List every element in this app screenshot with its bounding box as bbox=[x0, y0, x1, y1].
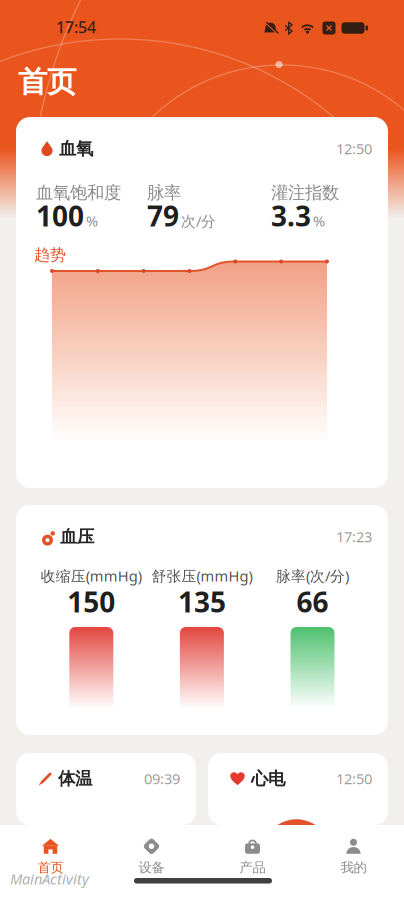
staticText: 设备 bbox=[138, 859, 164, 876]
staticText: 12:50 bbox=[336, 769, 372, 788]
staticText: 趋势 bbox=[34, 245, 66, 265]
staticText: 135 bbox=[178, 583, 226, 620]
staticText: % bbox=[86, 211, 98, 230]
staticText: 12:50 bbox=[336, 139, 372, 158]
staticText: 舒张压(mmHg) bbox=[151, 566, 252, 585]
staticText: 收缩压(mmHg) bbox=[41, 566, 142, 585]
staticText: % bbox=[313, 211, 325, 230]
staticText: 首页 bbox=[18, 64, 76, 100]
staticText: 血氧饱和度 bbox=[36, 182, 121, 203]
staticText: 09:39 bbox=[144, 769, 180, 788]
button[interactable]: 我的 bbox=[303, 831, 404, 883]
staticText: 100 bbox=[36, 197, 84, 234]
staticText: 次/分 bbox=[181, 211, 216, 231]
staticText: 我的 bbox=[340, 859, 366, 876]
button[interactable]: 血压 bbox=[16, 505, 388, 735]
button[interactable]: 心电 bbox=[208, 753, 388, 825]
staticText: 150 bbox=[67, 583, 115, 620]
staticText: 首页 bbox=[37, 859, 63, 876]
staticText: 血氧 bbox=[59, 138, 93, 159]
button[interactable]: 产品 bbox=[202, 831, 303, 883]
staticText: 66 bbox=[296, 583, 328, 620]
staticText: 3.3 bbox=[271, 197, 311, 234]
staticText: 血压 bbox=[60, 526, 94, 547]
staticText: MainActivity bbox=[10, 869, 89, 888]
button[interactable]: 设备 bbox=[101, 831, 202, 883]
staticText: 17:54 bbox=[56, 16, 96, 38]
staticText: 心电 bbox=[251, 768, 285, 789]
staticText: 产品 bbox=[239, 859, 265, 876]
staticText: 脉率 bbox=[147, 182, 181, 203]
staticText: 脉率(次/分) bbox=[276, 566, 349, 585]
staticText: 体温 bbox=[58, 768, 92, 789]
button[interactable]: 首页 bbox=[0, 831, 101, 883]
button[interactable]: 血氧 bbox=[16, 117, 388, 488]
staticText: 79 bbox=[147, 197, 179, 234]
staticText: 灌注指数 bbox=[271, 182, 339, 203]
staticText: 17:23 bbox=[336, 527, 372, 546]
button[interactable]: 体温 bbox=[16, 753, 196, 825]
